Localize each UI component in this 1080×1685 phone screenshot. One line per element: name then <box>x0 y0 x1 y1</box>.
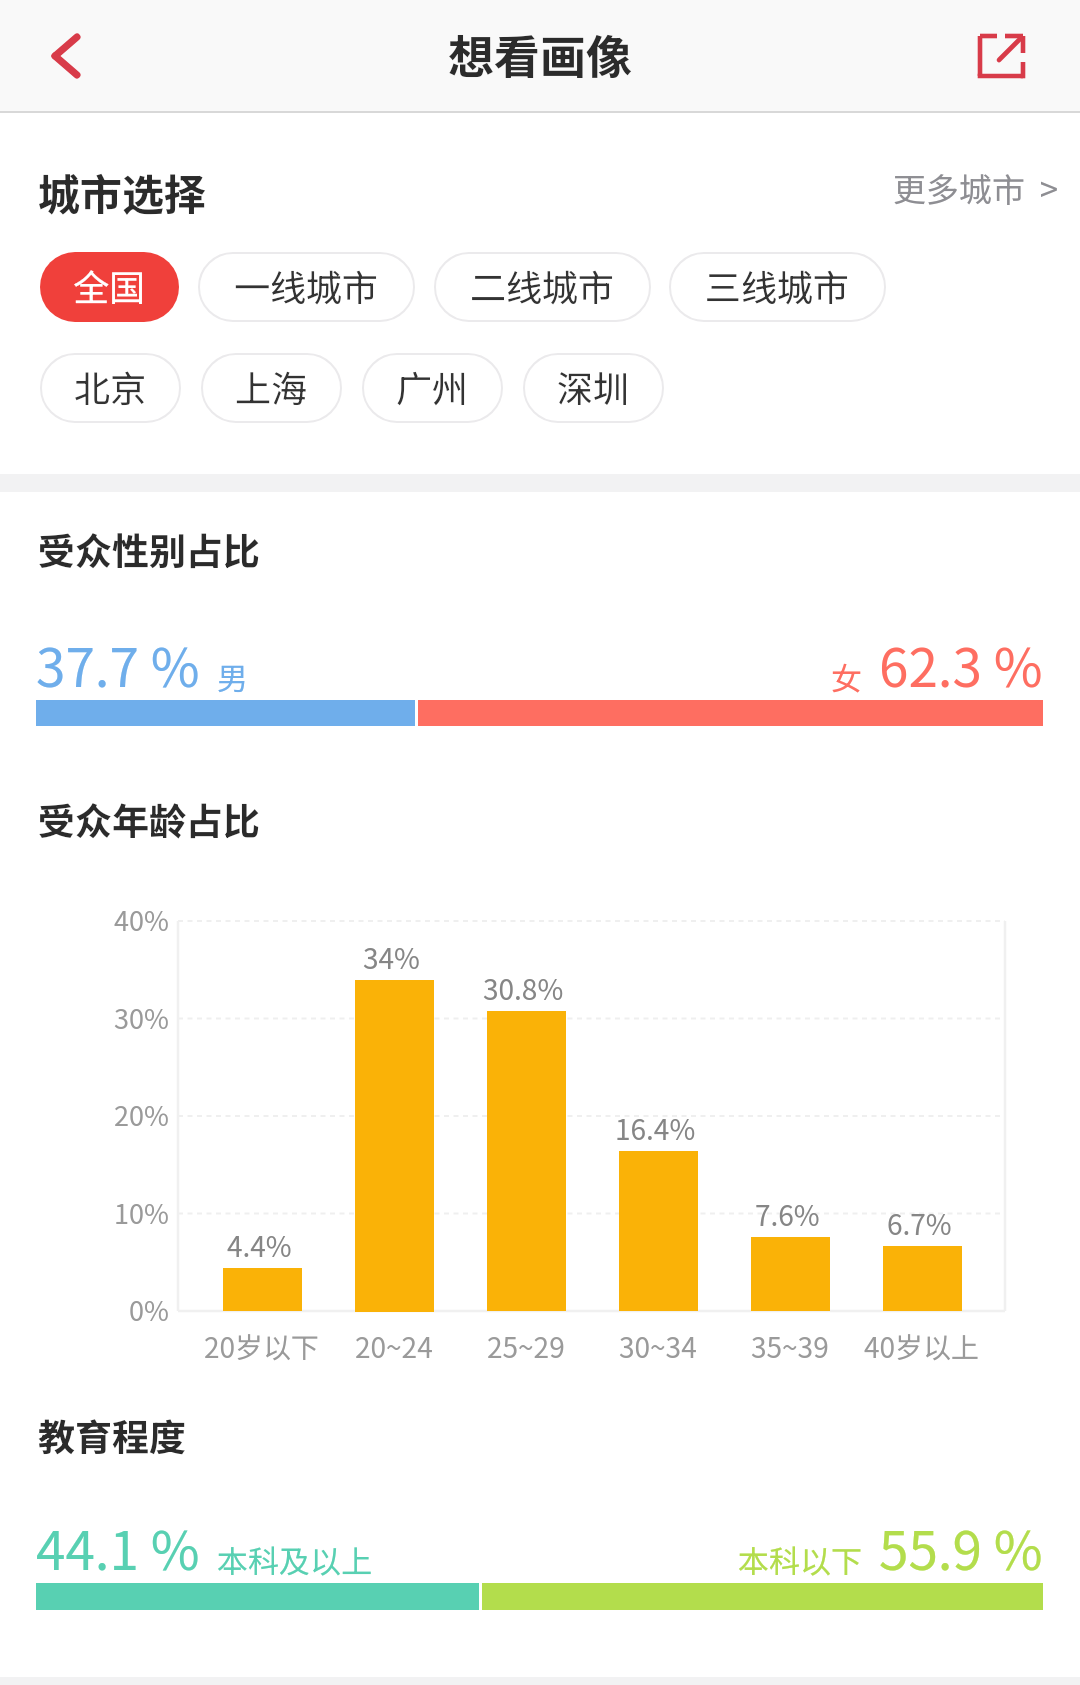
staticText: 受众性别占比 <box>38 522 260 576</box>
staticText: 55.9 % <box>879 1509 1043 1586</box>
button[interactable]: Share <box>960 16 1044 96</box>
staticText: 6.7% <box>887 1203 952 1244</box>
staticText: 二线城市 <box>470 259 615 311</box>
staticText: 深圳 <box>557 360 630 412</box>
staticText: 想看画像 <box>448 21 632 88</box>
staticText: 女 <box>831 654 862 699</box>
staticText: 7.6% <box>755 1194 820 1235</box>
staticText: 男 <box>217 654 248 699</box>
staticText: 40岁以上 <box>864 1326 980 1367</box>
staticText: 20~24 <box>355 1326 433 1367</box>
staticText: 一线城市 <box>234 259 379 311</box>
staticText: 62.3 % <box>879 626 1043 703</box>
staticText: 4.4% <box>227 1225 292 1266</box>
staticText: 本科以下 <box>738 1537 862 1582</box>
staticText: 30.8% <box>483 968 564 1009</box>
button[interactable]: 广州 <box>362 353 503 423</box>
button[interactable]: 更多城市 > <box>893 164 1059 212</box>
button[interactable]: Back <box>18 18 98 94</box>
staticText: 34% <box>363 937 420 978</box>
button[interactable]: 一线城市 <box>198 252 415 322</box>
button[interactable]: 北京 <box>40 353 181 423</box>
staticText: 30~34 <box>619 1326 697 1367</box>
staticText: 16.4% <box>615 1108 696 1149</box>
staticText: 10% <box>114 1193 169 1232</box>
staticText: 35~39 <box>751 1326 829 1367</box>
staticText: 上海 <box>235 360 308 412</box>
button[interactable]: 二线城市 <box>434 252 651 322</box>
button[interactable]: 深圳 <box>523 353 664 423</box>
button[interactable]: 上海 <box>201 353 342 423</box>
staticText: 全国 <box>73 259 146 311</box>
staticText: 受众年龄占比 <box>38 792 260 846</box>
staticText: 20岁以下 <box>204 1326 320 1367</box>
staticText: 30% <box>114 998 169 1037</box>
staticText: 本科及以上 <box>217 1537 372 1582</box>
staticText: 城市选择 <box>38 161 207 222</box>
staticText: 44.1 % <box>36 1509 200 1586</box>
button[interactable]: 三线城市 <box>669 252 886 322</box>
staticText: 40% <box>114 900 169 939</box>
staticText: 37.7 % <box>36 626 200 703</box>
staticText: 更多城市 > <box>893 164 1059 212</box>
staticText: 三线城市 <box>705 259 850 311</box>
staticText: 北京 <box>74 360 147 412</box>
button[interactable]: 全国 <box>40 252 179 322</box>
staticText: 广州 <box>396 360 469 412</box>
staticText: 教育程度 <box>38 1408 186 1462</box>
staticText: 0% <box>129 1290 169 1329</box>
staticText: 25~29 <box>487 1326 565 1367</box>
staticText: 20% <box>114 1095 169 1134</box>
